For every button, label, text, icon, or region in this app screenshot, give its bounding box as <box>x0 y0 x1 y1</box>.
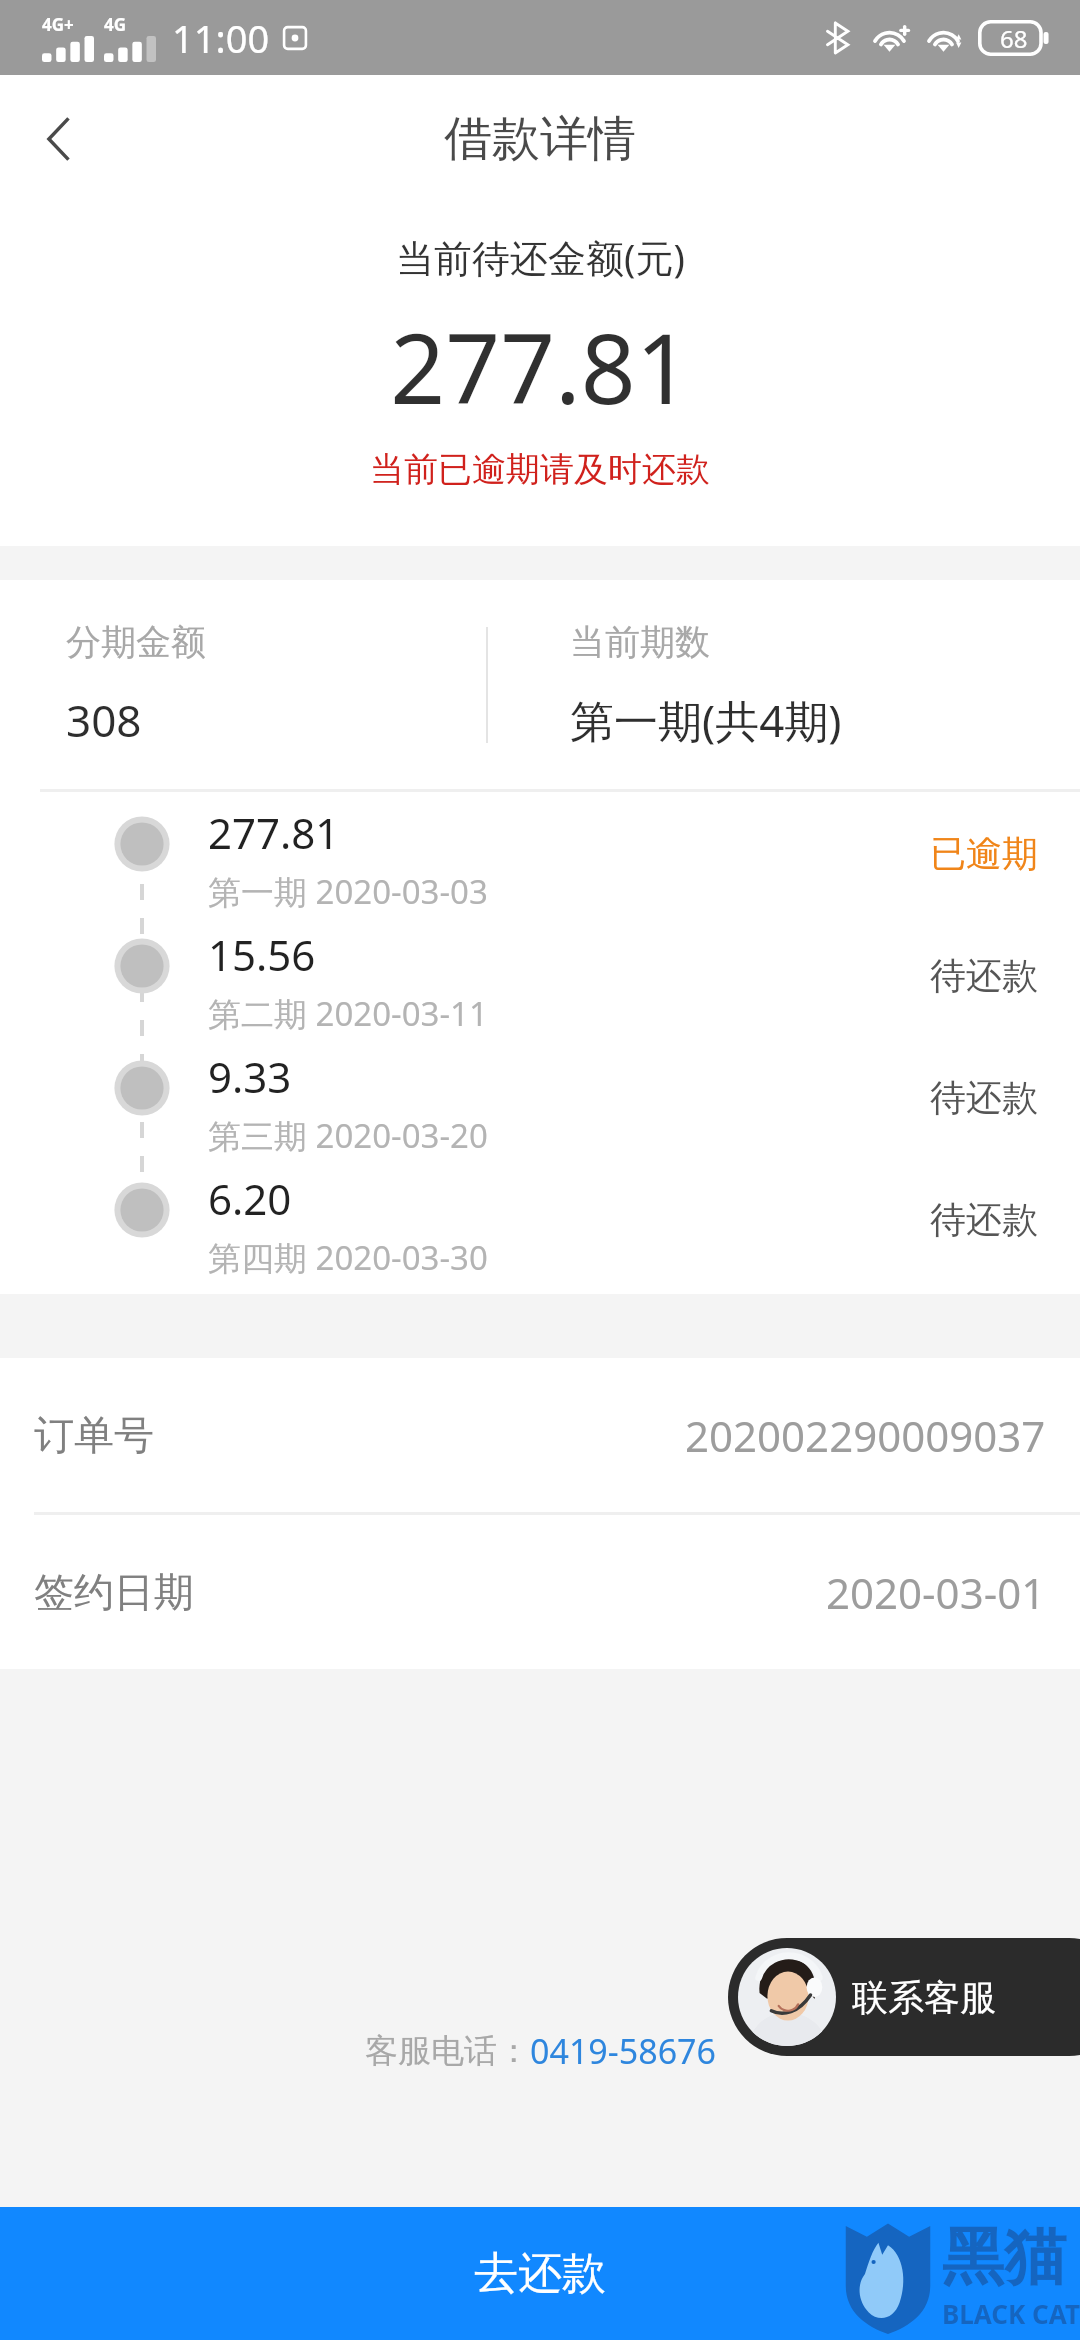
staticText: 15.56 <box>208 926 316 983</box>
staticText: 订单号 <box>34 1410 154 1460</box>
staticText: 分期金额 <box>66 620 206 664</box>
staticText: 签约日期 <box>34 1567 194 1617</box>
staticText: 当前待还金额(元) <box>396 231 685 283</box>
staticText: 联系客服 <box>852 1975 996 2020</box>
staticText: 11:00 <box>172 12 270 64</box>
button[interactable]: 6.20 <box>0 1158 1080 1280</box>
staticText: 已逾期 <box>930 831 1038 876</box>
staticText: BLACK CAT <box>942 2296 1080 2331</box>
staticText: 9.33 <box>208 1048 292 1105</box>
staticText: 第一期(共4期) <box>570 690 842 750</box>
staticText: 借款详情 <box>444 109 636 169</box>
staticText: 68 <box>1000 22 1028 55</box>
staticText: 277.81 <box>208 804 340 861</box>
staticText: 第四期 2020-03-30 <box>208 1235 488 1280</box>
staticText: 308 <box>66 690 142 750</box>
staticText: 黑猫 <box>942 2218 1066 2296</box>
staticText: 待还款 <box>930 953 1038 998</box>
button[interactable]: 订单号 <box>0 1358 1080 1512</box>
button[interactable]: 277.81 <box>0 792 1080 914</box>
staticText: 第三期 2020-03-20 <box>208 1113 488 1158</box>
staticText: 4G <box>104 13 127 36</box>
button[interactable]: 15.56 <box>0 914 1080 1036</box>
staticText: 待还款 <box>930 1197 1038 1242</box>
button[interactable]: 去还款 <box>0 2207 1080 2340</box>
staticText: 当前已逾期请及时还款 <box>370 448 710 491</box>
button[interactable]: 签约日期 <box>0 1515 1080 1669</box>
staticText: 2020-03-01 <box>826 1564 1046 1621</box>
button[interactable]: 9.33 <box>0 1036 1080 1158</box>
staticText: 当前期数 <box>570 620 710 664</box>
staticText: 第一期 2020-03-03 <box>208 869 488 914</box>
staticText: 4G+ <box>42 13 74 36</box>
staticText: 202002290009037 <box>685 1407 1046 1464</box>
staticText: 6.20 <box>208 1170 292 1227</box>
staticText: 去还款 <box>474 2246 606 2301</box>
staticText: 0419-58676 <box>530 2028 716 2074</box>
staticText: 客服电话： <box>365 2030 530 2072</box>
staticText: 277.81 <box>390 301 691 432</box>
staticText: 第二期 2020-03-11 <box>208 991 488 1036</box>
button[interactable]: 联系客服 <box>728 1938 1080 2056</box>
button[interactable]: 返回 <box>0 80 118 198</box>
staticText: 待还款 <box>930 1075 1038 1120</box>
